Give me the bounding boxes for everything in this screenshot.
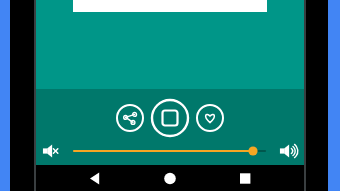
button[interactable]: Favorite [197,105,223,131]
button[interactable]: Volume up [277,140,301,162]
button[interactable]: Back [80,167,110,189]
button[interactable]: Home [155,167,185,189]
button[interactable]: Mute [40,140,64,162]
button[interactable]: Recent apps [230,167,260,189]
button[interactable]: Stop [152,100,188,136]
button[interactable]: Share [117,105,143,131]
button[interactable]: Volume slider [74,142,266,160]
